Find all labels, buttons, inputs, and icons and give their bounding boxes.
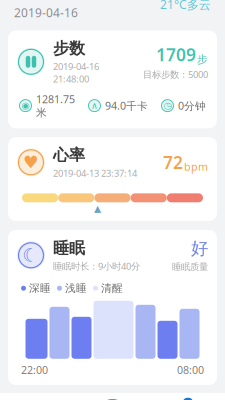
- staticText: 清醒: [101, 282, 123, 295]
- staticText: 2019-04-16: [14, 5, 78, 20]
- staticText: 👤: [177, 397, 197, 400]
- button[interactable]: ⌂: [0, 390, 75, 400]
- staticText: 好: [191, 238, 208, 259]
- staticText: 1281.75米: [36, 92, 75, 119]
- staticText: ◷: [163, 100, 171, 111]
- staticText: 睡眠质量: [172, 261, 208, 273]
- button[interactable]: 添加: [75, 395, 150, 400]
- staticText: ♥: [23, 152, 39, 172]
- staticText: bpm: [184, 160, 208, 174]
- staticText: 2019-04-16 21:48:00: [53, 60, 99, 85]
- staticText: 步: [197, 53, 208, 66]
- staticText: 2019-04-13 23:37:14: [53, 167, 137, 179]
- staticText: 睡眠: [53, 238, 85, 258]
- staticText: 94.0千卡: [105, 99, 148, 113]
- staticText: 心率: [53, 145, 85, 165]
- button[interactable]: 👤: [150, 391, 225, 400]
- staticText: 浅睡: [65, 282, 87, 295]
- staticText: 步数: [53, 39, 85, 58]
- staticText: 72: [163, 151, 183, 174]
- staticText: 0分钟: [178, 99, 206, 113]
- staticText: 08:00: [177, 363, 204, 377]
- staticText: 深睡: [29, 282, 51, 295]
- staticText: 目标步数：5000: [143, 68, 208, 80]
- staticText: 22:00: [21, 363, 48, 377]
- staticText: 1709: [156, 43, 196, 66]
- staticText: 21°C多云: [160, 0, 211, 12]
- staticText: ◉: [21, 100, 29, 111]
- staticText: ☾: [22, 245, 39, 266]
- staticText: ▲: [94, 203, 101, 214]
- staticText: 睡眠时长：9小时40分: [53, 260, 140, 272]
- staticText: ∧: [91, 100, 98, 111]
